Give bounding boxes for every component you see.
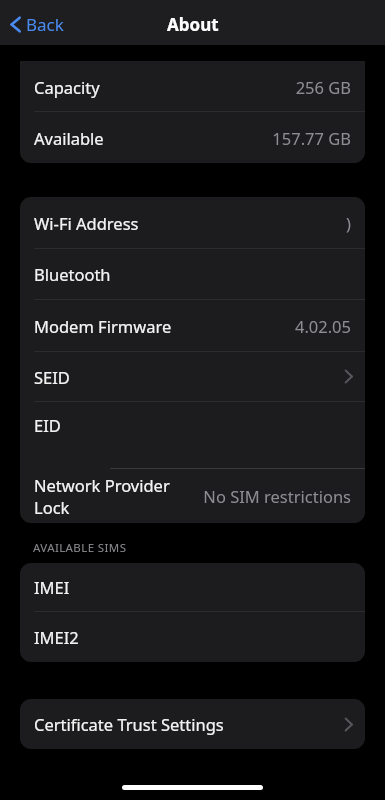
- button[interactable]: Certificate Trust Settings: [20, 699, 365, 749]
- button[interactable]: Modem Firmware: [20, 300, 365, 351]
- staticText: Bluetooth: [34, 263, 111, 285]
- button[interactable]: Capacity: [20, 62, 365, 111]
- staticText: Network Provider Lock: [34, 474, 203, 518]
- staticText: IMEI2: [34, 626, 79, 648]
- button[interactable]: IMEI2: [20, 612, 365, 662]
- staticText: About: [167, 13, 219, 36]
- staticText: Capacity: [34, 76, 100, 98]
- staticText: SEID: [34, 366, 70, 388]
- staticText: Available: [34, 127, 104, 149]
- button[interactable]: Bluetooth: [20, 249, 365, 299]
- staticText: EID: [34, 414, 61, 436]
- staticText: AVAILABLE SIMS: [33, 540, 127, 556]
- staticText: ): [346, 212, 351, 234]
- button[interactable]: Available: [20, 112, 365, 163]
- staticText: 157.77 GB: [272, 127, 351, 149]
- staticText: No SIM restrictions: [203, 485, 351, 507]
- button[interactable]: Network Provider Lock: [20, 469, 365, 523]
- staticText: Modem Firmware: [34, 315, 172, 337]
- button[interactable]: Back: [0, 8, 74, 41]
- staticText: Wi-Fi Address: [34, 212, 139, 234]
- staticText: 256 GB: [295, 76, 351, 98]
- staticText: 4.02.05: [294, 315, 351, 337]
- button[interactable]: EID: [20, 402, 365, 469]
- button[interactable]: IMEI: [20, 563, 365, 611]
- staticText: Certificate Trust Settings: [34, 713, 224, 735]
- button[interactable]: Wi-Fi Address: [20, 197, 365, 248]
- staticText: Back: [26, 13, 64, 36]
- button[interactable]: SEID: [20, 352, 365, 401]
- staticText: IMEI: [34, 576, 70, 598]
